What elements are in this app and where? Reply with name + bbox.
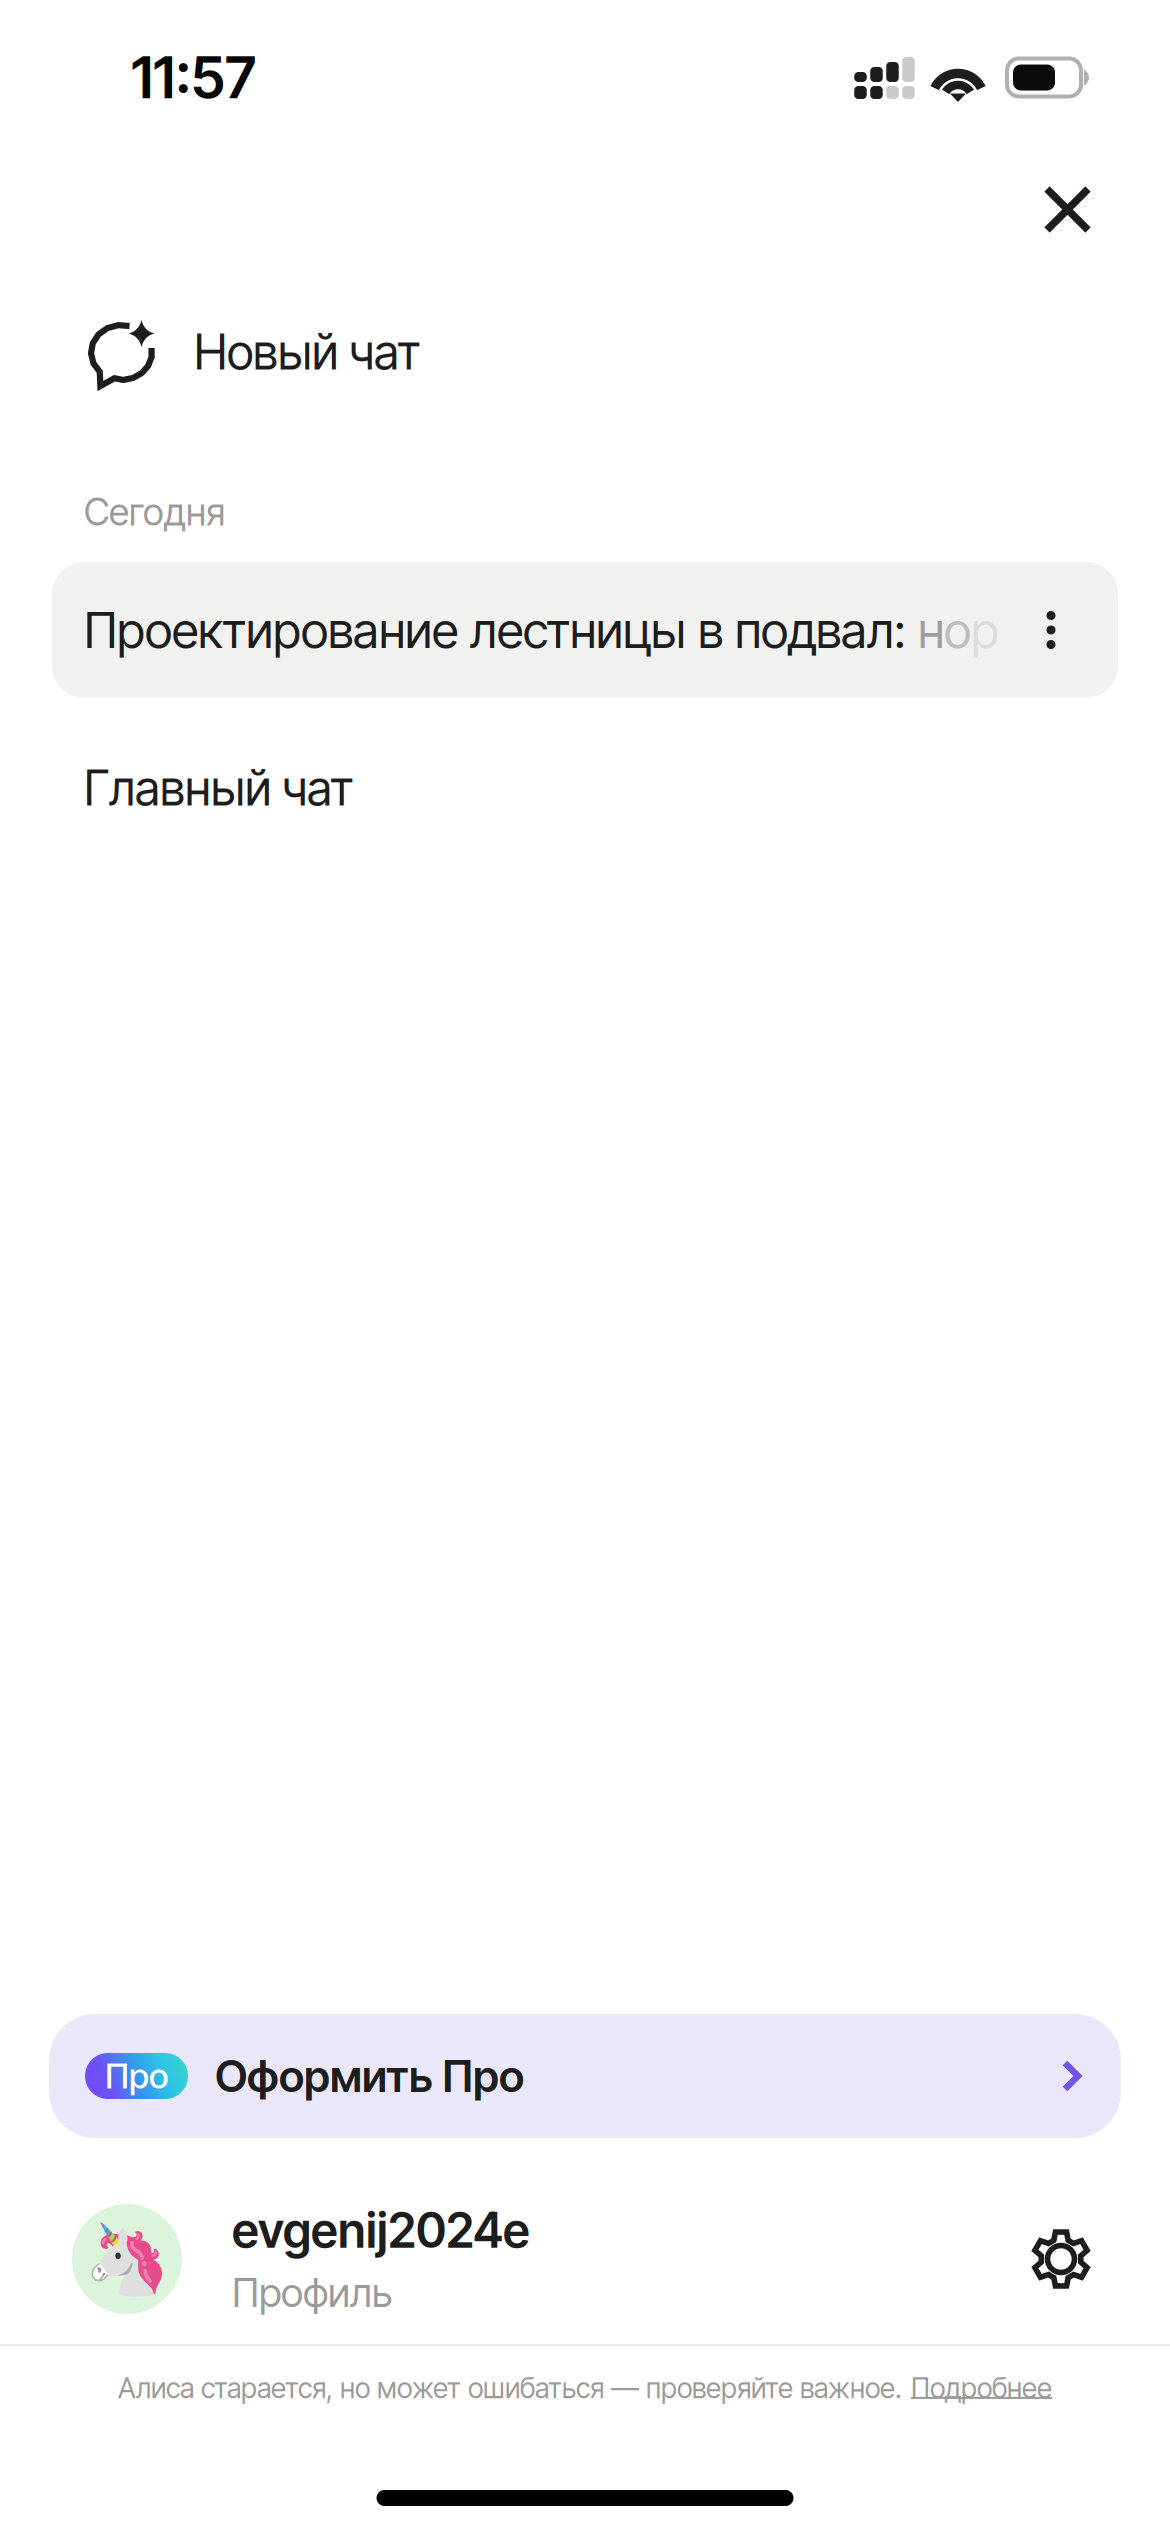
- staticText: Алиса старается, но может ошибаться — пр…: [118, 2371, 902, 2405]
- staticText: Оформить Про: [215, 2049, 524, 2103]
- staticText: Главный чат: [84, 759, 353, 817]
- button[interactable]: Проектирование лестницы в подвал:: [0, 562, 1170, 698]
- button[interactable]: 🦄: [0, 2184, 1001, 2334]
- staticText: Профиль: [232, 2268, 392, 2317]
- button[interactable]: Настройки: [1001, 2184, 1121, 2334]
- staticText: Новый чат: [194, 323, 420, 381]
- button[interactable]: Главный чат: [0, 726, 1170, 850]
- button[interactable]: Алиса старается, но может ошибаться — пр…: [0, 2346, 1170, 2442]
- staticText: evgenij2024e: [232, 2201, 530, 2259]
- button[interactable]: Закрыть: [1015, 155, 1120, 264]
- button[interactable]: Новый чат: [0, 302, 1170, 402]
- staticText: о: [944, 600, 971, 660]
- staticText: Сегодня: [84, 489, 225, 535]
- staticText: 11:57: [131, 43, 256, 112]
- staticText: Подробнее: [911, 2371, 1052, 2405]
- staticText: 🦄: [84, 2218, 170, 2300]
- staticText: Про: [105, 2055, 168, 2097]
- staticText: р: [971, 600, 999, 660]
- button[interactable]: Про: [0, 2014, 1170, 2138]
- staticText: н: [906, 600, 944, 660]
- staticText: Проектирование лестницы в подвал:: [84, 600, 906, 660]
